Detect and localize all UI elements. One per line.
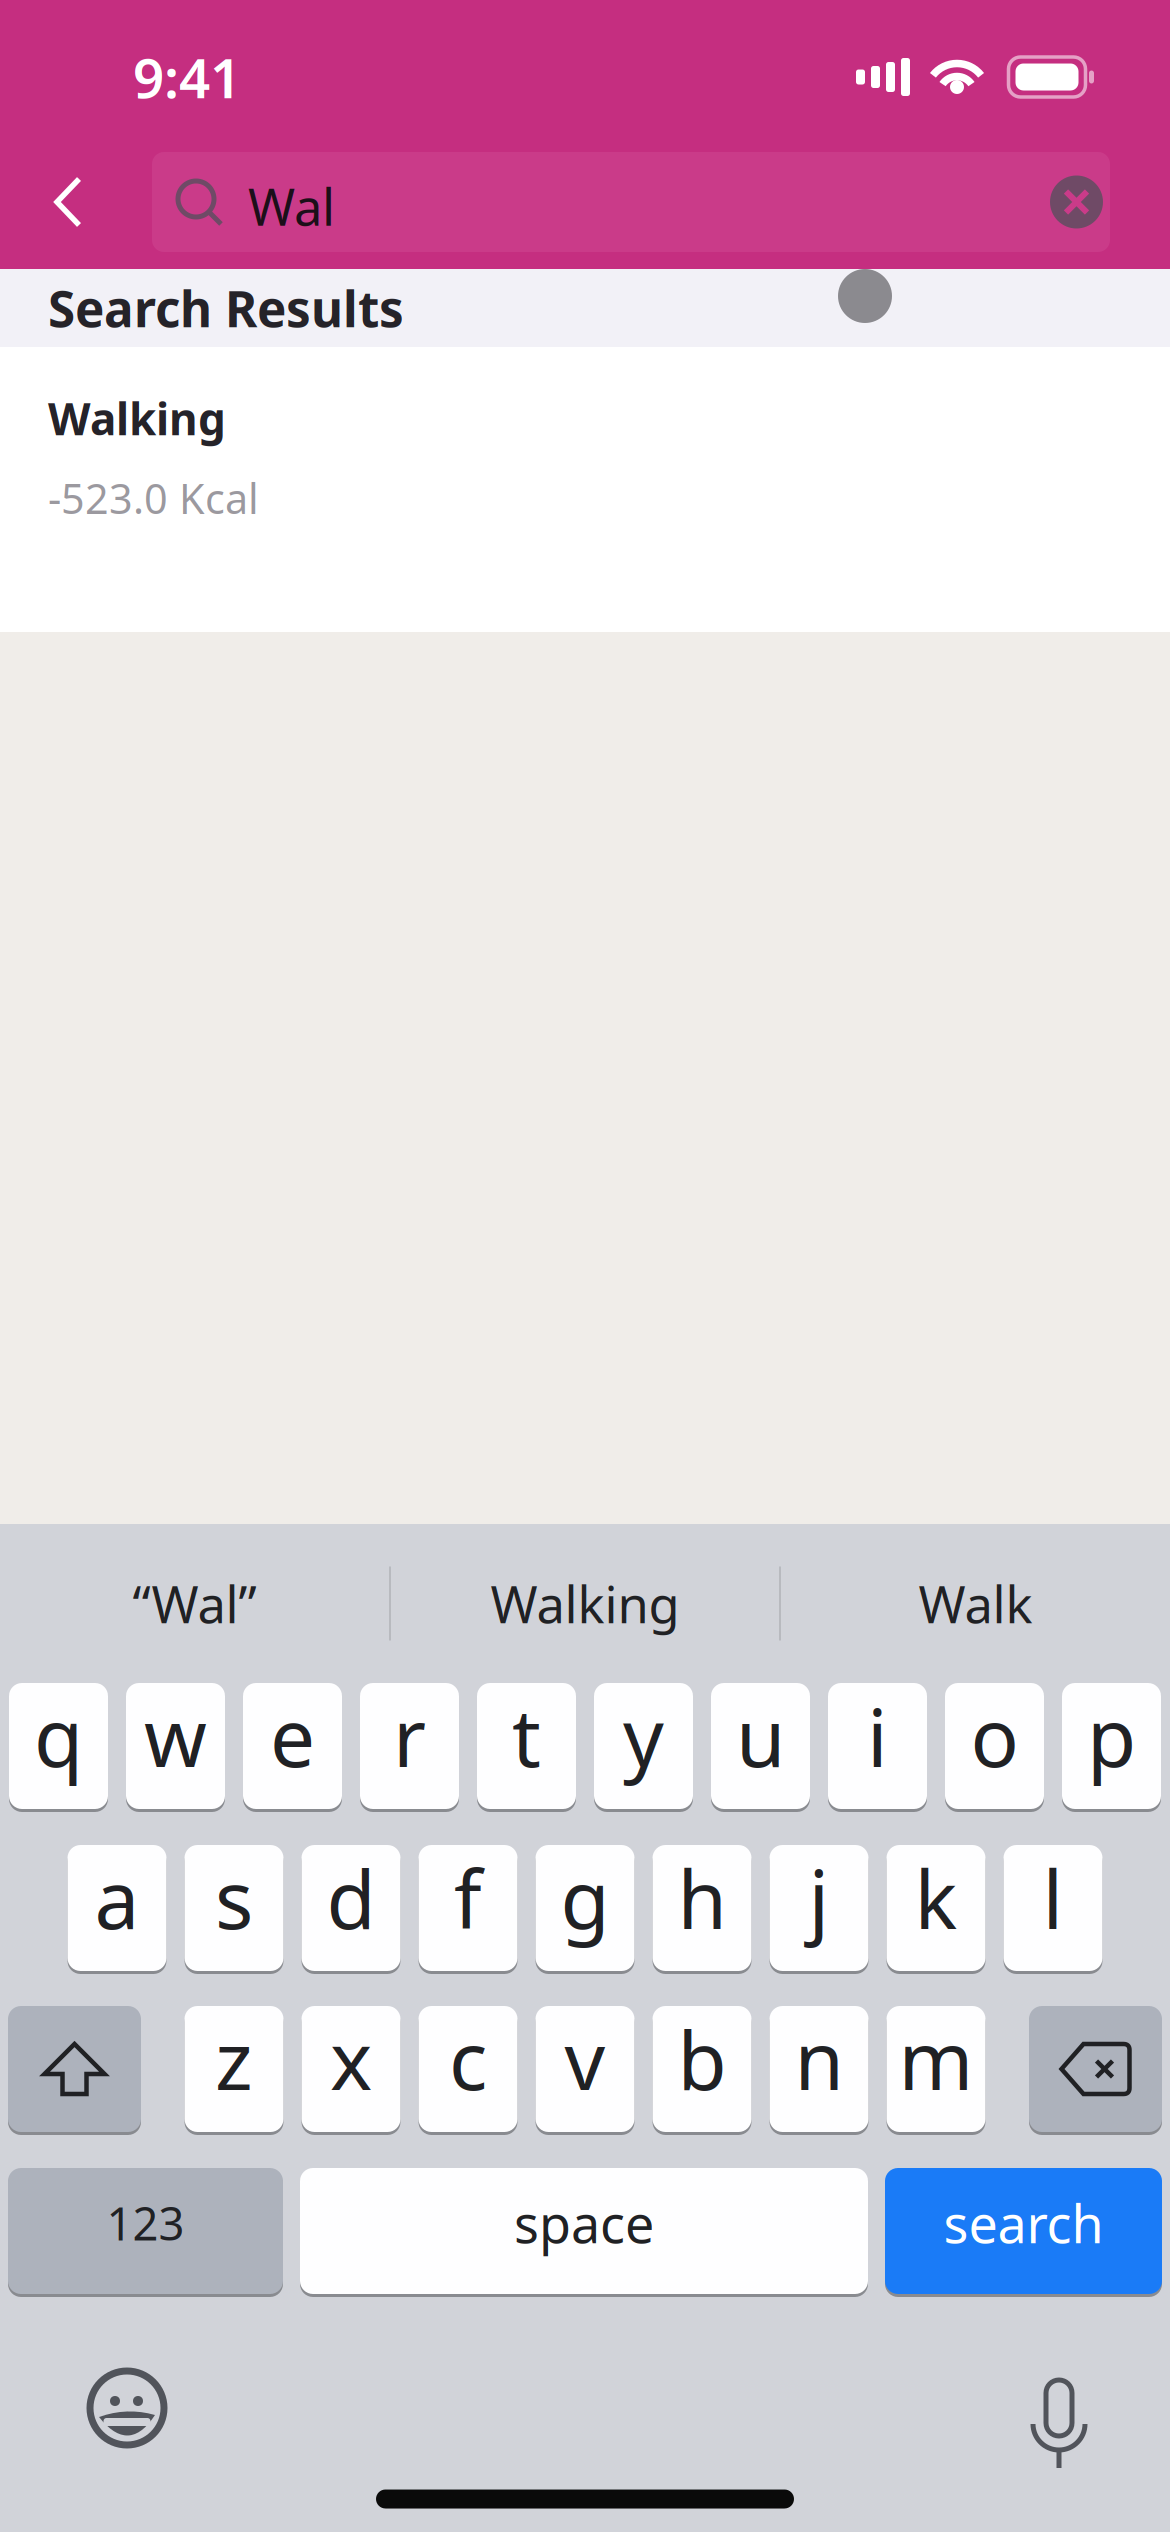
staticText: z [215, 2006, 253, 2112]
button[interactable]: Walking [0, 347, 1170, 632]
staticText: m [898, 2006, 973, 2112]
staticText: u [736, 1683, 785, 1789]
staticText: e [270, 1683, 315, 1789]
staticText: Wal [248, 172, 335, 240]
button[interactable]: g [535, 1845, 634, 1971]
staticText: y [623, 1683, 664, 1789]
staticText: s [215, 1845, 253, 1951]
staticText: Walk [918, 1570, 1032, 1637]
staticText: p [1087, 1683, 1136, 1789]
button[interactable]: 123 [8, 2168, 283, 2294]
staticText: g [560, 1845, 609, 1951]
button[interactable]: b [652, 2006, 751, 2132]
button[interactable]: e [243, 1683, 342, 1809]
staticText: Walking [490, 1570, 679, 1637]
button[interactable]: w [126, 1683, 225, 1809]
staticText: i [867, 1683, 888, 1789]
staticText: “Wal” [132, 1570, 256, 1637]
button[interactable]: n [769, 2006, 868, 2132]
staticText: x [330, 2006, 372, 2112]
button[interactable]: space [300, 2168, 868, 2294]
staticText: h [677, 1845, 726, 1951]
button[interactable]: s [184, 1845, 283, 1971]
staticText: n [794, 2006, 843, 2112]
staticText: c [449, 2006, 487, 2112]
button[interactable]: Clear search text [1050, 175, 1103, 228]
button[interactable]: i [828, 1683, 927, 1809]
button[interactable]: d [301, 1845, 400, 1971]
button[interactable]: Delete [1029, 2006, 1162, 2132]
staticText: f [454, 1845, 482, 1951]
button[interactable]: l [1003, 1845, 1102, 1971]
staticText: t [512, 1683, 541, 1789]
staticText: 123 [106, 2193, 184, 2253]
staticText: Search Results [48, 275, 404, 341]
button[interactable]: o [945, 1683, 1044, 1809]
button[interactable]: v [535, 2006, 634, 2132]
button[interactable]: j [769, 1845, 868, 1971]
button[interactable]: u [711, 1683, 810, 1809]
button[interactable]: y [594, 1683, 693, 1809]
button[interactable]: f [418, 1845, 517, 1971]
button[interactable]: x [301, 2006, 400, 2132]
button[interactable]: p [1062, 1683, 1161, 1809]
staticText: b [677, 2006, 726, 2112]
button[interactable]: h [652, 1845, 751, 1971]
button[interactable]: Emoji [80, 2361, 174, 2455]
button[interactable]: t [477, 1683, 576, 1809]
button[interactable]: r [360, 1683, 459, 1809]
button[interactable]: m [886, 2006, 985, 2132]
staticText: w [144, 1683, 207, 1789]
staticText: Walking [48, 389, 226, 447]
button[interactable]: a [67, 1845, 166, 1971]
staticText: k [914, 1845, 957, 1951]
button[interactable]: “Wal” [0, 1524, 389, 1683]
button[interactable]: Walk [781, 1524, 1170, 1683]
staticText: -523.0 Kcal [48, 470, 259, 525]
staticText: a [94, 1845, 139, 1951]
staticText: q [34, 1683, 83, 1789]
button[interactable]: z [184, 2006, 283, 2132]
staticText: v [564, 2006, 605, 2112]
button[interactable]: k [886, 1845, 985, 1971]
staticText: 9:41 [133, 41, 241, 113]
button[interactable]: Back [0, 152, 152, 252]
staticText: o [970, 1683, 1018, 1789]
staticText: d [326, 1845, 375, 1951]
button[interactable]: q [9, 1683, 108, 1809]
staticText: search [943, 2188, 1103, 2258]
staticText: space [514, 2188, 654, 2258]
button[interactable]: c [418, 2006, 517, 2132]
staticText: j [808, 1845, 829, 1951]
staticText: r [393, 1683, 426, 1789]
button[interactable]: Walking [391, 1524, 779, 1683]
staticText: l [1042, 1845, 1063, 1951]
button[interactable]: search [885, 2168, 1162, 2294]
button[interactable]: Shift [8, 2006, 141, 2132]
button[interactable]: Dictation [1030, 2363, 1088, 2453]
